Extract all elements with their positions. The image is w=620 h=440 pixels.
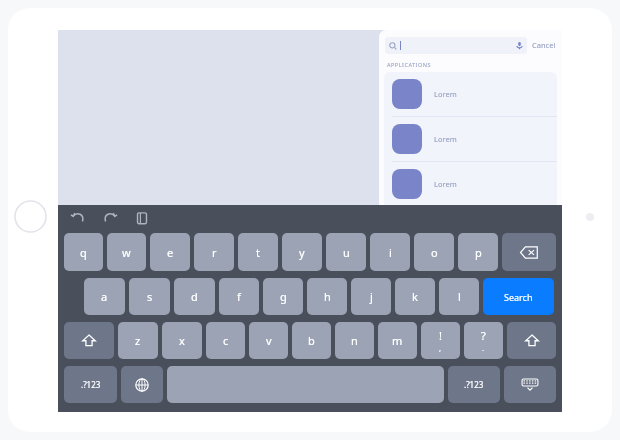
button[interactable]: Backspace bbox=[502, 233, 556, 271]
button[interactable]: e bbox=[150, 233, 190, 271]
staticText: j bbox=[370, 289, 373, 304]
button[interactable]: o bbox=[414, 233, 454, 271]
staticText: p bbox=[475, 245, 482, 260]
button[interactable]: Change keyboard language bbox=[121, 366, 163, 403]
staticText: y bbox=[299, 245, 305, 260]
staticText: t bbox=[256, 245, 260, 260]
button[interactable]: q bbox=[64, 233, 103, 271]
staticText: Lorem bbox=[434, 134, 457, 144]
staticText: x bbox=[179, 333, 185, 348]
staticText: e bbox=[167, 245, 174, 260]
button[interactable]: ! bbox=[421, 322, 460, 359]
staticText: q bbox=[80, 245, 87, 260]
staticText: n bbox=[351, 333, 358, 348]
staticText: u bbox=[343, 245, 350, 260]
button[interactable]: Redo bbox=[102, 210, 118, 226]
button[interactable]: Shift bbox=[507, 322, 556, 359]
button[interactable]: k bbox=[395, 278, 435, 315]
button[interactable]: s bbox=[129, 278, 170, 315]
staticText: h bbox=[324, 289, 331, 304]
staticText: w bbox=[122, 245, 131, 260]
button[interactable]: Lorem bbox=[384, 117, 557, 161]
button[interactable]: z bbox=[118, 322, 158, 359]
button[interactable]: g bbox=[263, 278, 303, 315]
staticText: z bbox=[135, 333, 141, 348]
button[interactable]: Hide keyboard bbox=[504, 366, 556, 403]
button[interactable]: v bbox=[249, 322, 288, 359]
button[interactable]: Clipboard bbox=[134, 210, 150, 226]
staticText: ! bbox=[439, 328, 442, 343]
staticText: o bbox=[431, 245, 438, 260]
staticText: b bbox=[308, 333, 315, 348]
button[interactable]: u bbox=[326, 233, 366, 271]
staticText: Search bbox=[504, 291, 533, 303]
button[interactable]: i bbox=[370, 233, 410, 271]
staticText: i bbox=[389, 245, 392, 260]
button[interactable]: Voice search bbox=[385, 37, 527, 54]
button[interactable]: .?123 bbox=[448, 366, 500, 403]
staticText: d bbox=[191, 289, 198, 304]
button[interactable]: f bbox=[219, 278, 259, 315]
button[interactable]: j bbox=[351, 278, 391, 315]
button[interactable]: b bbox=[292, 322, 331, 359]
staticText: v bbox=[266, 333, 272, 348]
button[interactable]: Lorem bbox=[384, 72, 557, 116]
staticText: , bbox=[439, 343, 442, 354]
staticText: Lorem bbox=[434, 89, 457, 99]
button[interactable]: Lorem bbox=[384, 162, 557, 205]
button[interactable]: w bbox=[107, 233, 146, 271]
other: Voice search bbox=[515, 41, 524, 50]
staticText: .?123 bbox=[81, 379, 101, 390]
button[interactable] bbox=[167, 366, 444, 403]
button[interactable]: Search bbox=[483, 278, 554, 315]
button[interactable]: a bbox=[84, 278, 125, 315]
staticText: . bbox=[482, 343, 485, 354]
button[interactable]: r bbox=[194, 233, 234, 271]
button[interactable]: y bbox=[282, 233, 322, 271]
button[interactable]: Undo bbox=[70, 210, 86, 226]
staticText: c bbox=[223, 333, 229, 348]
staticText: ? bbox=[481, 328, 486, 343]
button[interactable]: ? bbox=[464, 322, 503, 359]
staticText: r bbox=[212, 245, 217, 260]
button[interactable]: t bbox=[238, 233, 278, 271]
button[interactable]: l bbox=[439, 278, 479, 315]
button[interactable]: p bbox=[458, 233, 498, 271]
button[interactable]: h bbox=[307, 278, 347, 315]
staticText: a bbox=[101, 289, 108, 304]
staticText: APPLICATIONS bbox=[387, 61, 431, 68]
button[interactable]: n bbox=[335, 322, 374, 359]
staticText: .?123 bbox=[464, 379, 484, 390]
staticText: Cancel bbox=[532, 40, 556, 50]
button[interactable]: m bbox=[378, 322, 417, 359]
button[interactable]: x bbox=[162, 322, 202, 359]
button[interactable]: c bbox=[206, 322, 245, 359]
staticText: m bbox=[392, 333, 403, 348]
staticText: g bbox=[280, 289, 287, 304]
staticText: l bbox=[458, 289, 461, 304]
button[interactable]: d bbox=[174, 278, 215, 315]
button[interactable]: .?123 bbox=[64, 366, 117, 403]
staticText: s bbox=[147, 289, 153, 304]
staticText: k bbox=[412, 289, 418, 304]
staticText: f bbox=[237, 289, 241, 304]
staticText: Lorem bbox=[434, 179, 457, 189]
button[interactable]: Cancel bbox=[531, 40, 557, 50]
button[interactable]: Shift bbox=[64, 322, 114, 359]
